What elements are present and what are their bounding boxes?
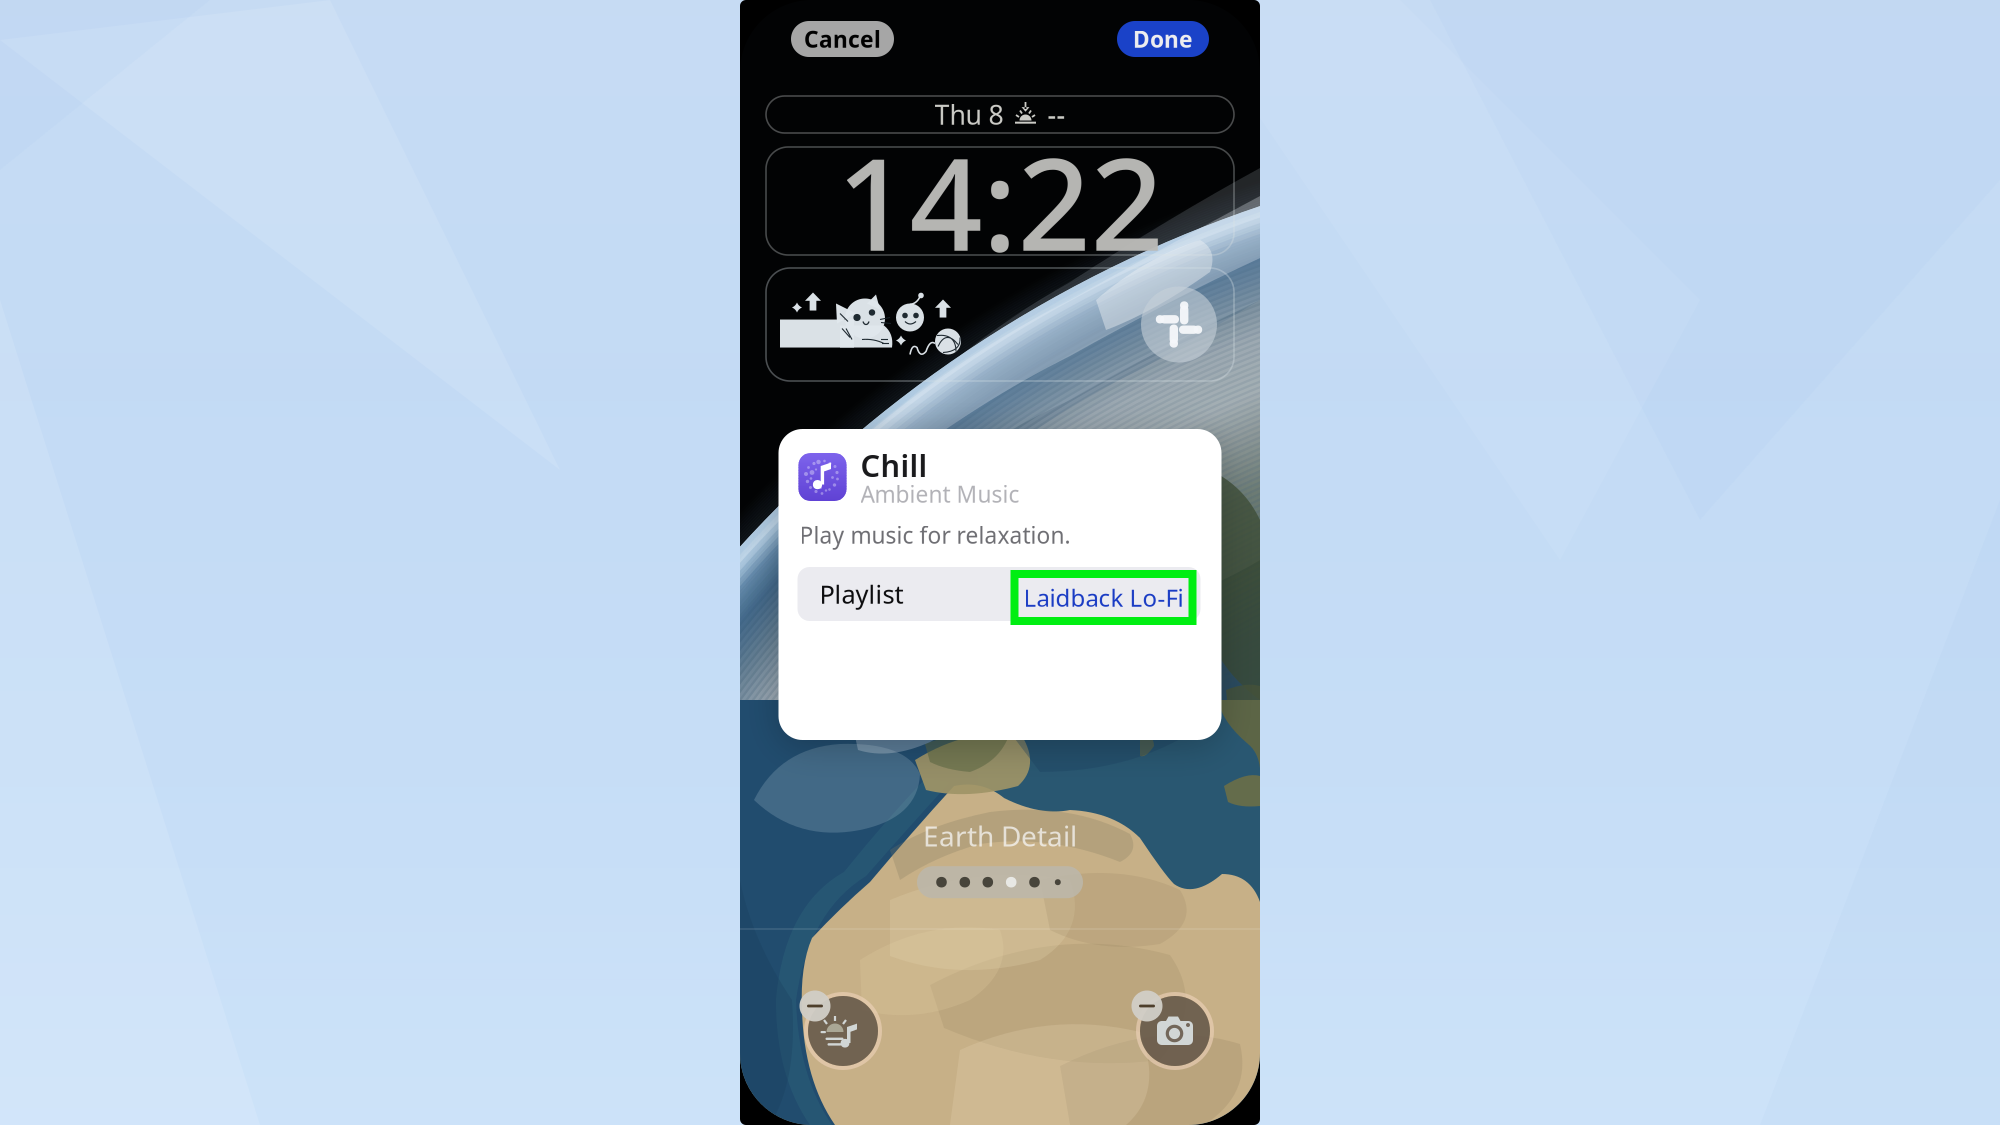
button[interactable]: Focus [787, 975, 883, 1071]
button[interactable]: Wallpaper page [917, 866, 1083, 898]
button[interactable]: Cancel [791, 21, 894, 57]
staticText: Earth Detail [923, 817, 1077, 854]
staticText: Cancel [804, 24, 881, 54]
button[interactable]: Done [1117, 21, 1209, 57]
button[interactable]: 14:22 [766, 147, 1234, 255]
button[interactable]: Playlist [797, 567, 1200, 621]
staticText: Done [1133, 24, 1193, 54]
button[interactable]: Thu 8 [766, 96, 1234, 133]
button[interactable]: Widgets [766, 268, 1234, 381]
staticText: Thu 8 [934, 97, 1003, 132]
button[interactable]: Camera [1119, 975, 1215, 1071]
staticText: Chill [860, 445, 927, 485]
staticText: -- [1047, 97, 1065, 132]
staticText: Playlist [819, 577, 903, 611]
staticText: Laidback Lo-Fi [1023, 582, 1183, 613]
staticText: 14:22 [836, 116, 1163, 286]
staticText: Play music for relaxation. [799, 520, 1070, 550]
button[interactable]: Laidback Lo-Fi [1010, 570, 1196, 625]
staticText: Ambient Music [860, 479, 1019, 509]
